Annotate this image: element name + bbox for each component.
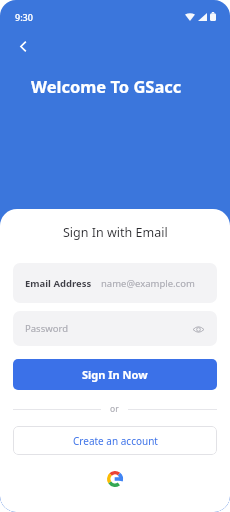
- button[interactable]: Show password: [191, 322, 205, 336]
- button[interactable]: Create an account: [13, 426, 217, 455]
- staticText: name@example.com: [101, 277, 195, 290]
- staticText: Email Address: [25, 277, 92, 290]
- staticText: 9:30: [15, 11, 33, 23]
- staticText: Welcome To GSacc: [31, 75, 182, 97]
- button[interactable]: Password: [13, 311, 217, 346]
- staticText: Sign In Now: [82, 367, 148, 382]
- button[interactable]: Back: [10, 33, 37, 60]
- staticText: Sign In with Email: [63, 224, 168, 241]
- button[interactable]: Email Address: [13, 263, 217, 303]
- button[interactable]: Sign in with Google: [104, 468, 126, 490]
- staticText: or: [110, 403, 119, 415]
- staticText: Create an account: [73, 434, 158, 448]
- staticText: Password: [25, 322, 68, 335]
- button[interactable]: Sign In Now: [13, 359, 217, 390]
